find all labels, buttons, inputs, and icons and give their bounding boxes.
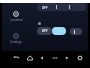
button[interactable]: Home [25, 53, 34, 62]
button[interactable]: Previous [37, 53, 46, 62]
button[interactable]: Settings [75, 53, 84, 62]
button[interactable]: Back [11, 53, 20, 62]
button[interactable] [70, 28, 82, 35]
button[interactable]: More [50, 53, 59, 62]
staticText: OFF [42, 6, 48, 10]
button[interactable]: Settings [4, 33, 28, 44]
button[interactable]: OFF [37, 3, 86, 11]
staticText: Location [10, 18, 23, 22]
staticText: Settings [10, 40, 22, 44]
button[interactable] [52, 27, 66, 35]
other: Status [37, 21, 42, 26]
button[interactable]: OFF [37, 27, 52, 35]
button[interactable]: Location [4, 11, 28, 22]
button[interactable]: Play [62, 53, 71, 62]
staticText: OFF [42, 29, 48, 33]
